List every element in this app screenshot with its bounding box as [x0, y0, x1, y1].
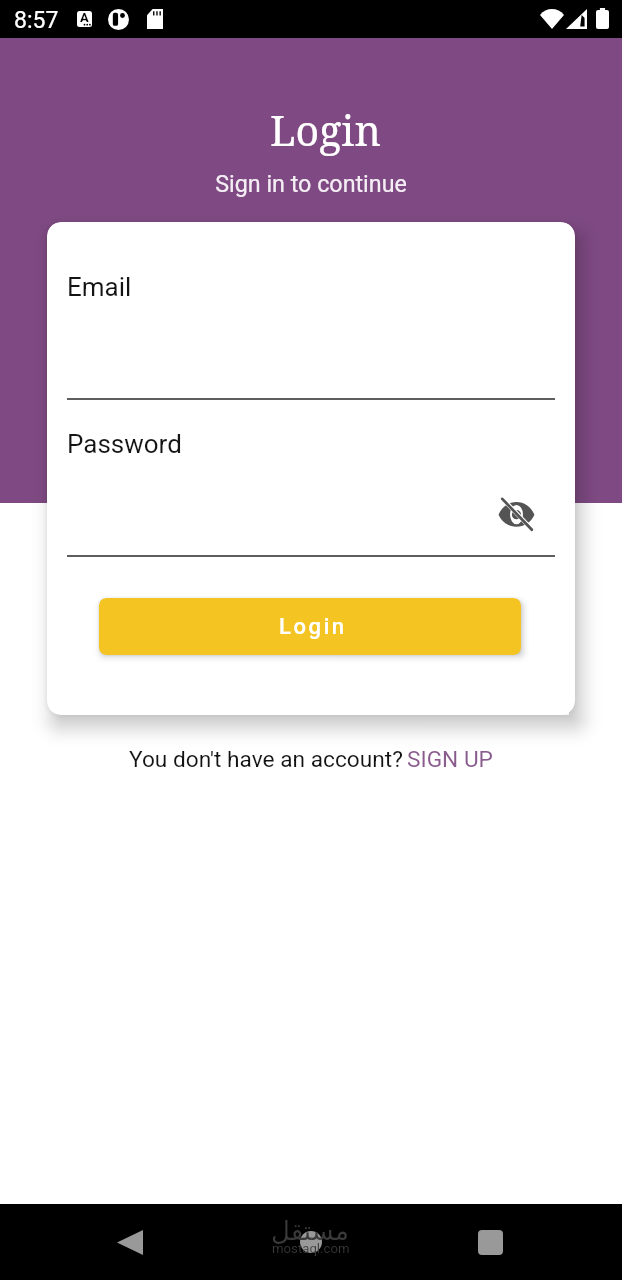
button[interactable]: Back: [90, 1204, 170, 1280]
button[interactable]: SIGN UP: [403, 746, 489, 773]
staticText: mostaql.com: [272, 1241, 350, 1256]
button[interactable]: Recents: [450, 1204, 530, 1280]
button[interactable]: Login: [99, 598, 521, 655]
button[interactable]: Home: [271, 1204, 351, 1280]
staticText: Email: [67, 272, 132, 302]
staticText: مستقل: [271, 1216, 349, 1246]
staticText: You don't have an account?: [129, 746, 403, 773]
button[interactable]: Show password: [492, 490, 540, 538]
staticText: 8:57: [14, 7, 59, 34]
staticText: Login: [279, 614, 347, 640]
staticText: A: [80, 10, 89, 25]
staticText: SIGN UP: [407, 746, 493, 773]
staticText: Password: [67, 429, 182, 459]
staticText: Login: [270, 102, 381, 158]
staticText: Sign in to continue: [0, 170, 622, 197]
